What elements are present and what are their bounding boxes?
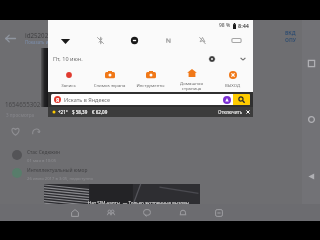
button[interactable]: Инструменты [130,66,171,92]
button[interactable]: NFC [151,30,185,50]
button[interactable]: Стас Седюкин [12,150,61,165]
button[interactable]: Recents [307,59,316,68]
button[interactable]: Домашняя страница [171,66,212,92]
button[interactable]: Я [51,94,250,105]
staticText: 16546553020076 [5,100,55,108]
staticText: Пт, 10 июн. [53,55,83,62]
button[interactable]: Notifications [172,204,194,221]
staticText: +21° [58,109,68,115]
staticText: 01 мая в 10:05 [27,158,57,164]
staticText: Стас Седюкин [27,149,61,156]
button[interactable]: Back [3,31,17,45]
staticText: id2520277 [25,31,56,39]
staticText: Показать историю [25,39,65,45]
button[interactable]: Location [185,30,219,50]
button[interactable]: Do not disturb [117,30,151,50]
staticText: Снимок экрана [89,82,130,88]
button[interactable]: Messages [136,204,158,221]
staticText: Я [56,97,60,103]
button[interactable]: Share [28,123,45,140]
button[interactable]: Home [64,204,86,221]
button[interactable]: Back [307,172,316,181]
staticText: Запись [48,82,89,88]
button[interactable]: Friends [100,204,122,221]
button[interactable]: Settings [205,52,218,65]
button[interactable]: Снимок экрана [89,66,130,92]
button[interactable]: Cast [219,30,253,50]
staticText: ВЫХОД [212,82,253,88]
button[interactable]: Search [233,94,250,105]
staticText: Отключить [218,109,243,115]
staticText: Нет SIM-карты. — Только экстренные вызов… [88,200,190,206]
button[interactable]: Expand [236,52,249,65]
staticText: 26 июля 2017 в 3:05, недоступно [27,176,94,182]
button[interactable]: Запись [48,66,89,92]
staticText: € 62,09 [92,109,108,115]
staticText: ОПУ [285,37,296,44]
staticText: 98 % [219,22,231,29]
button[interactable]: Интеллектуальный юмор [12,168,94,183]
staticText: Инструменты [130,82,171,88]
staticText: 8:44 [238,22,249,29]
staticText: 3 просмотра [6,112,35,118]
button[interactable]: Отключить [218,109,250,115]
button[interactable]: Alice [220,94,233,105]
staticText: $ 58,39 [72,109,88,115]
staticText: Искать в Яндексе [64,96,110,103]
button[interactable]: Menu [208,204,230,221]
button[interactable]: Bluetooth [83,30,117,50]
staticText: ВКД [285,30,296,37]
staticText: Домашняя страница [171,80,212,91]
staticText: Интеллектуальный юмор [27,167,88,174]
button[interactable]: Wi-Fi [48,30,83,50]
button[interactable]: Like [7,123,24,140]
button[interactable]: ВЫХОД [212,66,253,92]
button[interactable]: Home [307,115,316,124]
